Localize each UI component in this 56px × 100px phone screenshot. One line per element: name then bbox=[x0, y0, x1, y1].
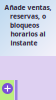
staticText: horarios al instante bbox=[10, 30, 45, 47]
button[interactable]: Add bbox=[2, 83, 13, 94]
staticText: reservas, o bloqueos bbox=[10, 12, 46, 30]
staticText: Añade ventas, bbox=[4, 3, 51, 12]
